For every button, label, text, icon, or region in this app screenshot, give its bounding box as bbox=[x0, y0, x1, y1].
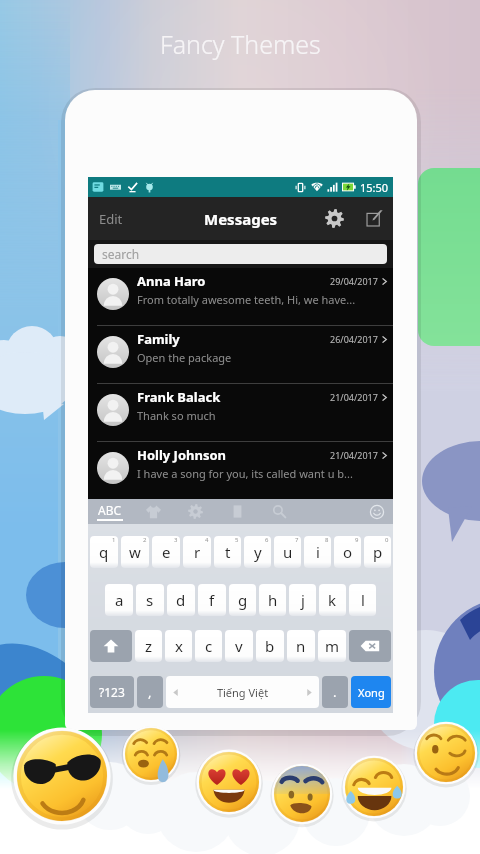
staticText: 2 bbox=[143, 536, 147, 544]
button[interactable]: Settings bbox=[313, 197, 355, 240]
staticText: I have a song for you, its called want u… bbox=[137, 466, 353, 481]
staticText: 15:50 bbox=[360, 180, 389, 195]
button[interactable]: . bbox=[322, 676, 348, 708]
button[interactable]: Family bbox=[88, 326, 393, 383]
staticText: c bbox=[205, 636, 213, 656]
button[interactable]: Tiếng Việt bbox=[166, 676, 319, 708]
button[interactable]: search bbox=[94, 244, 387, 264]
button[interactable]: e bbox=[152, 536, 180, 568]
button[interactable]: Emoji bbox=[361, 499, 393, 524]
staticText: Fancy Themes bbox=[160, 27, 321, 61]
button[interactable]: d bbox=[167, 584, 195, 616]
staticText: d bbox=[176, 590, 186, 610]
staticText: 1 bbox=[112, 536, 116, 544]
button[interactable]: Anna Haro bbox=[88, 268, 393, 325]
button[interactable]: Edit bbox=[88, 197, 134, 240]
button[interactable]: q bbox=[90, 536, 118, 568]
button[interactable]: w bbox=[121, 536, 149, 568]
staticText: Messages bbox=[204, 209, 278, 229]
staticText: 0 bbox=[385, 536, 389, 544]
button[interactable]: Shift bbox=[90, 630, 132, 662]
staticText: , bbox=[148, 683, 152, 701]
staticText: i bbox=[316, 542, 320, 562]
button[interactable]: l bbox=[349, 584, 376, 616]
button[interactable]: Xong bbox=[351, 676, 391, 708]
button[interactable]: u bbox=[274, 536, 301, 568]
button[interactable]: y bbox=[244, 536, 271, 568]
staticText: 21/04/2017 bbox=[330, 449, 378, 461]
button[interactable]: Holly Johnson bbox=[88, 442, 393, 499]
button[interactable]: i bbox=[304, 536, 331, 568]
staticText: search bbox=[102, 246, 140, 262]
staticText: 7 bbox=[295, 536, 299, 544]
staticText: ABC bbox=[98, 502, 122, 518]
button[interactable]: b bbox=[256, 630, 284, 662]
button[interactable]: , bbox=[137, 676, 163, 708]
staticText: w bbox=[129, 542, 141, 562]
staticText: . bbox=[333, 683, 337, 701]
button[interactable]: ?123 bbox=[90, 676, 134, 708]
button[interactable]: o bbox=[334, 536, 361, 568]
button[interactable]: Clipboard bbox=[216, 499, 258, 524]
staticText: 9 bbox=[355, 536, 359, 544]
staticText: 29/04/2017 bbox=[330, 275, 378, 287]
staticText: 3 bbox=[174, 536, 178, 544]
staticText: Family bbox=[137, 330, 330, 348]
button[interactable]: f bbox=[198, 584, 226, 616]
button[interactable]: Keyboard settings bbox=[174, 499, 216, 524]
button[interactable]: ABC bbox=[88, 499, 132, 524]
staticText: x bbox=[175, 636, 183, 656]
staticText: 6 bbox=[265, 536, 269, 544]
button[interactable]: Frank Balack bbox=[88, 384, 393, 441]
staticText: q bbox=[99, 542, 109, 562]
staticText: Tiếng Việt bbox=[180, 685, 305, 700]
staticText: Holly Johnson bbox=[137, 446, 330, 464]
button[interactable]: m bbox=[318, 630, 346, 662]
button[interactable]: j bbox=[289, 584, 316, 616]
staticText: u bbox=[283, 542, 293, 562]
button[interactable]: k bbox=[319, 584, 346, 616]
staticText: v bbox=[235, 636, 243, 656]
staticText: f bbox=[209, 590, 215, 610]
staticText: h bbox=[268, 590, 278, 610]
button[interactable]: Search bbox=[258, 499, 300, 524]
button[interactable]: s bbox=[136, 584, 164, 616]
staticText: g bbox=[238, 590, 248, 610]
staticText: p bbox=[373, 542, 383, 562]
button[interactable]: r bbox=[183, 536, 211, 568]
staticText: b bbox=[265, 636, 275, 656]
staticText: r bbox=[194, 542, 201, 562]
staticText: t bbox=[225, 542, 231, 562]
button[interactable]: t bbox=[214, 536, 241, 568]
staticText: Anna Haro bbox=[137, 272, 330, 290]
button[interactable]: p bbox=[364, 536, 391, 568]
staticText: ?123 bbox=[99, 684, 125, 700]
button[interactable]: Compose bbox=[355, 197, 393, 240]
button[interactable]: a bbox=[105, 584, 133, 616]
button[interactable]: Backspace bbox=[349, 630, 391, 662]
staticText: n bbox=[296, 636, 306, 656]
staticText: y bbox=[254, 542, 262, 562]
button[interactable]: z bbox=[135, 630, 162, 662]
button[interactable]: h bbox=[259, 584, 286, 616]
staticText: a bbox=[115, 590, 124, 610]
staticText: Open the package bbox=[137, 350, 232, 365]
staticText: Xong bbox=[358, 685, 385, 700]
button[interactable]: c bbox=[195, 630, 222, 662]
staticText: s bbox=[146, 590, 154, 610]
button[interactable]: v bbox=[225, 630, 253, 662]
staticText: j bbox=[301, 590, 305, 610]
staticText: 8 bbox=[325, 536, 329, 544]
button[interactable]: Themes bbox=[132, 499, 174, 524]
button[interactable]: g bbox=[229, 584, 256, 616]
staticText: 5 bbox=[235, 536, 239, 544]
button[interactable]: x bbox=[165, 630, 192, 662]
staticText: 26/04/2017 bbox=[330, 333, 378, 345]
staticText: o bbox=[343, 542, 353, 562]
staticText: 4 bbox=[205, 536, 209, 544]
staticText: m bbox=[325, 636, 340, 656]
staticText: k bbox=[328, 590, 337, 610]
staticText: Edit bbox=[99, 210, 123, 228]
button[interactable]: n bbox=[287, 630, 315, 662]
staticText: e bbox=[162, 542, 171, 562]
